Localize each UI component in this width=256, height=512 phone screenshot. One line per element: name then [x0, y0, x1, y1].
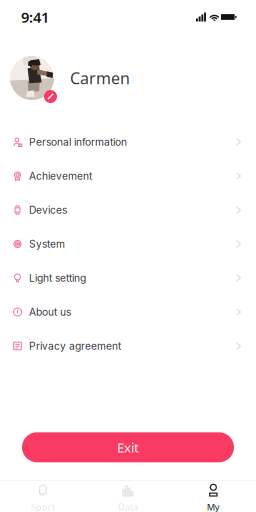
button[interactable]: Devices [0, 193, 256, 227]
staticText: Achievement [29, 170, 92, 182]
staticText: 9:41 [21, 7, 49, 27]
staticText: My [207, 501, 220, 512]
button[interactable]: Data [85, 484, 171, 512]
staticText: Exit [117, 438, 139, 456]
button[interactable]: Sport [0, 484, 85, 512]
button[interactable]: Achievement [0, 159, 256, 193]
button[interactable]: My [171, 484, 256, 512]
staticText: About us [29, 306, 71, 318]
button[interactable]: About us [0, 295, 256, 329]
button[interactable]: Exit [22, 432, 234, 462]
button[interactable]: Privacy agreement [0, 329, 256, 363]
staticText: System [29, 238, 65, 250]
staticText: Personal information [29, 136, 127, 148]
staticText: Light setting [29, 272, 86, 284]
button[interactable]: Personal information [0, 125, 256, 159]
staticText: Data [118, 501, 138, 512]
button[interactable]: Light setting [0, 261, 256, 295]
button[interactable]: System [0, 227, 256, 261]
staticText: Carmen [70, 67, 130, 89]
staticText: Devices [29, 204, 67, 216]
staticText: Sport [31, 501, 55, 512]
staticText: Privacy agreement [29, 340, 121, 352]
